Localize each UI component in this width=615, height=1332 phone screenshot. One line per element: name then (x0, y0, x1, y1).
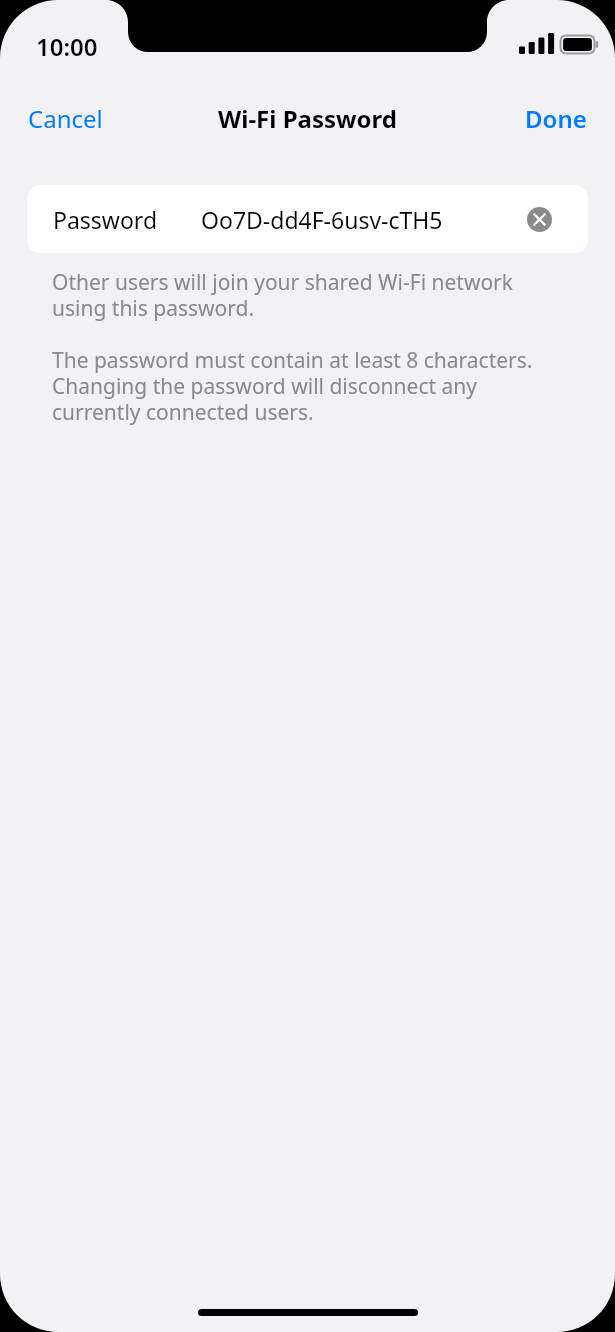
staticText: Password (53, 204, 158, 235)
staticText: Oo7D-dd4F-6usv-cTH5 (201, 204, 443, 235)
staticText: Done (525, 102, 587, 135)
staticText: 10:00 (36, 30, 98, 63)
button[interactable]: Cancel (20, 96, 111, 141)
button[interactable]: Done (517, 96, 595, 141)
staticText: Cancel (28, 102, 103, 135)
button[interactable]: Password (27, 185, 588, 253)
staticText: Wi-Fi Password (218, 102, 397, 135)
button[interactable]: Clear text (515, 195, 563, 243)
staticText: The password must contain at least 8 cha… (52, 346, 552, 427)
staticText: Other users will join your shared Wi-Fi … (52, 268, 542, 323)
